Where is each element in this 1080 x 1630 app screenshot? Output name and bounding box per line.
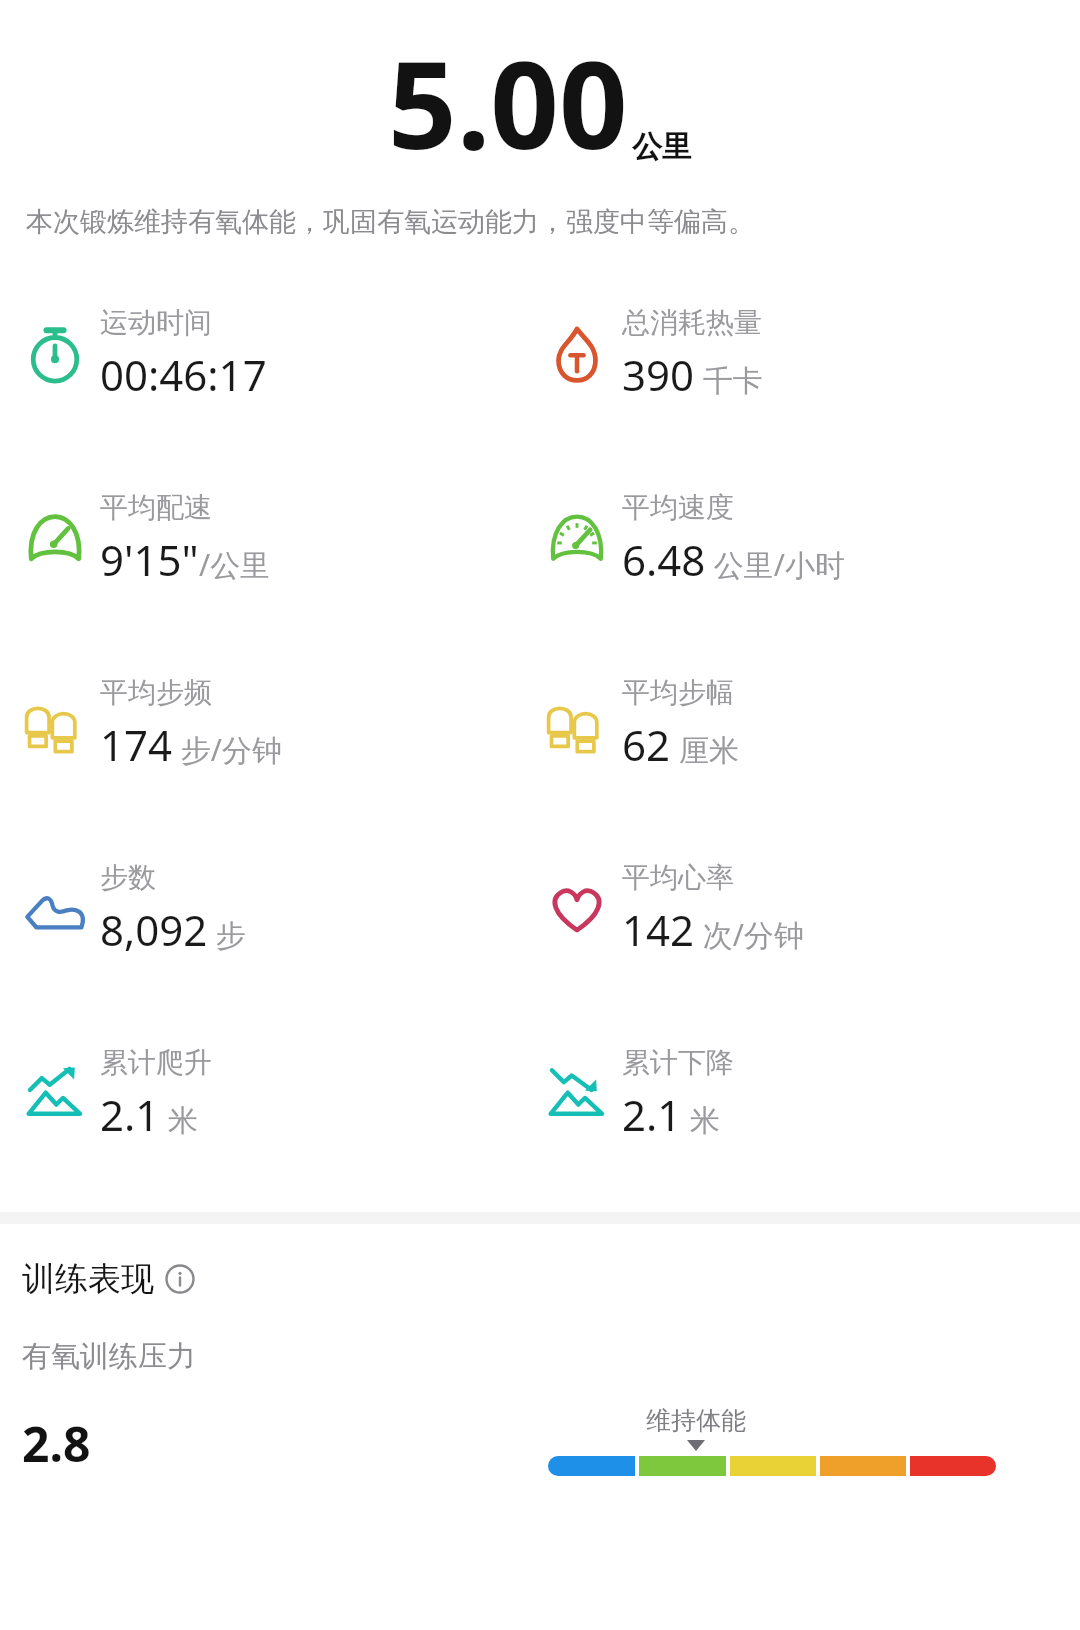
other: 总消耗热量 <box>544 321 610 387</box>
other: 步数 <box>22 876 88 942</box>
staticText: 运动时间 <box>100 305 212 340</box>
other: Information <box>165 1264 195 1294</box>
staticText: 5.00 <box>388 21 628 184</box>
staticText: 公里 <box>632 128 692 166</box>
button[interactable]: 平均配速 <box>22 446 540 631</box>
staticText: 00:46:17 <box>100 346 267 403</box>
staticText: 2.1 <box>622 1086 682 1143</box>
button[interactable]: 累计下降 <box>544 1001 1080 1186</box>
staticText: 平均步幅 <box>622 675 734 710</box>
staticText: 步数 <box>100 860 156 895</box>
staticText: 平均配速 <box>100 490 212 525</box>
staticText: 千卡 <box>695 359 763 400</box>
other: 平均心率 <box>544 876 610 942</box>
staticText: 本次锻炼维持有氧体能，巩固有氧运动能力，强度中等偏高。 <box>26 205 755 239</box>
button[interactable]: 平均心率 <box>544 816 1080 1001</box>
other: 平均配速 <box>22 506 88 572</box>
staticText: 厘米 <box>671 729 739 770</box>
button[interactable]: 平均步幅 <box>544 631 1080 816</box>
other: 累计爬升 <box>22 1061 88 1127</box>
button[interactable]: 运动时间 <box>22 261 540 446</box>
button[interactable]: 步数 <box>22 816 540 1001</box>
staticText: 米 <box>682 1099 720 1140</box>
staticText: 平均步频 <box>100 675 212 710</box>
button[interactable]: 累计爬升 <box>22 1001 540 1186</box>
button[interactable]: 总消耗热量 <box>544 261 1080 446</box>
staticText: 累计下降 <box>622 1045 734 1080</box>
staticText: 有氧训练压力 <box>22 1338 196 1375</box>
staticText: /公里 <box>199 544 271 585</box>
staticText: 8,092 <box>100 901 208 958</box>
other: 运动时间 <box>22 321 88 387</box>
staticText: 62 <box>622 716 671 773</box>
staticText: 米 <box>160 1099 198 1140</box>
staticText: 平均心率 <box>622 860 734 895</box>
staticText: 6.48 <box>622 531 706 588</box>
staticText: 训练表现 <box>22 1258 154 1300</box>
staticText: 2.1 <box>100 1086 160 1143</box>
staticText: 174 <box>100 716 173 773</box>
staticText: 公里/小时 <box>706 544 845 585</box>
staticText: 步 <box>208 914 246 955</box>
staticText: 维持体能 <box>646 1405 746 1436</box>
staticText: 总消耗热量 <box>622 305 762 340</box>
staticText: 平均速度 <box>622 490 734 525</box>
button[interactable]: 平均步频 <box>22 631 540 816</box>
other: 平均步幅 <box>544 691 610 757</box>
staticText: 累计爬升 <box>100 1045 212 1080</box>
staticText: 2.8 <box>22 1411 91 1476</box>
button[interactable]: 训练表现 <box>0 1254 1080 1304</box>
other: 平均速度 <box>544 506 610 572</box>
staticText: 142 <box>622 901 695 958</box>
staticText: 9'15" <box>100 531 199 588</box>
staticText: 次/分钟 <box>695 914 804 955</box>
other: 累计下降 <box>544 1061 610 1127</box>
other: 平均步频 <box>22 691 88 757</box>
staticText: 390 <box>622 346 695 403</box>
button[interactable]: 平均速度 <box>544 446 1080 631</box>
staticText: 步/分钟 <box>173 729 282 770</box>
